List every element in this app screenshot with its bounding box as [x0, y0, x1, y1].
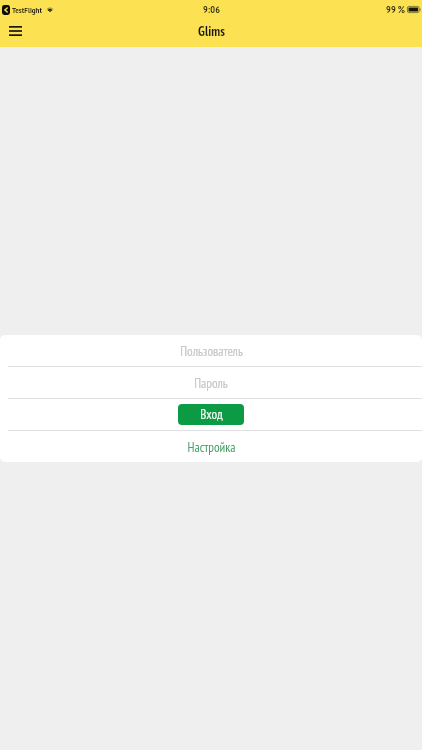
staticText: 99 % [386, 3, 405, 16]
staticText: TestFlight [12, 4, 42, 15]
button[interactable]: Настройка [0, 431, 422, 462]
staticText: Вход [200, 406, 223, 423]
staticText: Настройка [187, 439, 236, 456]
button[interactable]: Пароль [0, 367, 422, 398]
button[interactable]: Open navigation menu [3, 19, 27, 43]
staticText: Пользователь [180, 343, 243, 360]
button[interactable]: Вход [178, 404, 244, 425]
button[interactable]: Back to TestFlight [2, 5, 10, 15]
staticText: 9:06 [203, 3, 220, 16]
button[interactable]: Пользователь [0, 335, 422, 366]
staticText: Пароль [194, 375, 228, 392]
staticText: Glims [198, 22, 225, 39]
